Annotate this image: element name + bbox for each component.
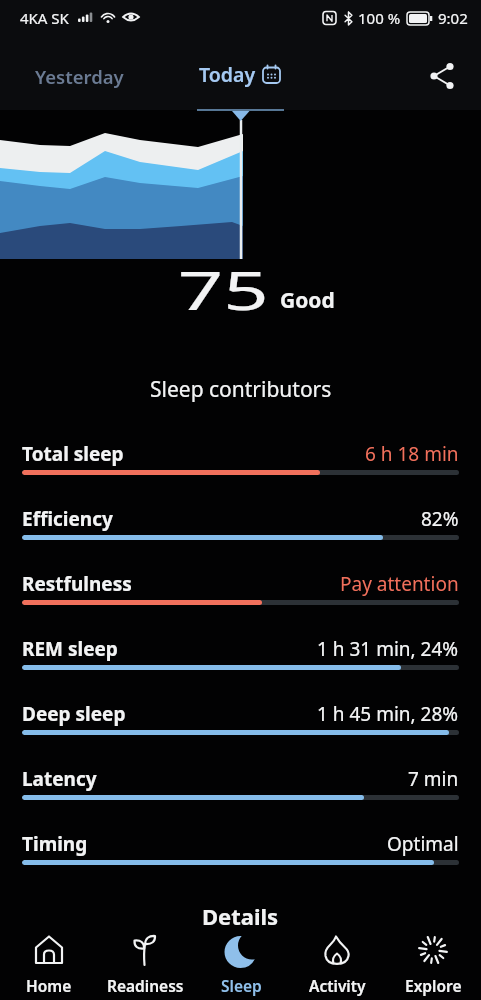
staticText: 9:02 xyxy=(438,8,468,28)
button[interactable]: Explore xyxy=(385,932,481,1000)
button[interactable]: Activity xyxy=(289,932,385,1000)
button[interactable]: Deep sleep xyxy=(22,693,459,758)
button[interactable]: Timing xyxy=(22,823,459,888)
staticText: 82% xyxy=(421,506,459,532)
button[interactable]: Yesterday xyxy=(35,64,124,89)
staticText: 7 min xyxy=(408,766,459,792)
staticText: Sleep xyxy=(221,975,262,996)
staticText: Optimal xyxy=(387,831,459,857)
button[interactable]: Readiness xyxy=(97,932,193,1000)
staticText: Efficiency xyxy=(22,506,113,532)
button[interactable]: REM sleep xyxy=(22,628,459,693)
staticText: 75 xyxy=(178,253,269,319)
button[interactable]: Details xyxy=(202,901,279,931)
staticText: 6 h 18 min xyxy=(365,441,459,467)
staticText: Latency xyxy=(22,766,97,792)
staticText: Sleep contributors xyxy=(150,375,332,404)
staticText: Good xyxy=(280,286,335,315)
staticText: Restfulness xyxy=(22,571,132,597)
staticText: Details xyxy=(202,901,279,931)
staticText: REM sleep xyxy=(22,636,118,662)
staticText: Readiness xyxy=(107,975,184,996)
staticText: Activity xyxy=(309,975,366,996)
button[interactable]: Latency xyxy=(22,758,459,823)
staticText: Home xyxy=(26,975,72,996)
button[interactable]: Sleep xyxy=(193,932,289,1000)
staticText: Explore xyxy=(405,975,462,996)
button[interactable]: Today xyxy=(199,61,281,88)
staticText: 1 h 31 min, 24% xyxy=(317,636,459,662)
staticText: Yesterday xyxy=(35,64,124,89)
staticText: Pay attention xyxy=(340,571,459,597)
button[interactable]: Home xyxy=(0,932,97,1000)
staticText: Total sleep xyxy=(22,441,124,467)
staticText: 1 h 45 min, 28% xyxy=(317,701,459,727)
staticText: Today xyxy=(199,61,256,88)
button[interactable]: Total sleep xyxy=(22,433,459,498)
button[interactable]: Restfulness xyxy=(22,563,459,628)
staticText: 100 % xyxy=(358,8,401,28)
staticText: 4KA SK xyxy=(20,8,69,28)
button[interactable] xyxy=(428,62,456,90)
staticText: Timing xyxy=(22,831,88,857)
button[interactable]: Efficiency xyxy=(22,498,459,563)
staticText: Deep sleep xyxy=(22,701,126,727)
